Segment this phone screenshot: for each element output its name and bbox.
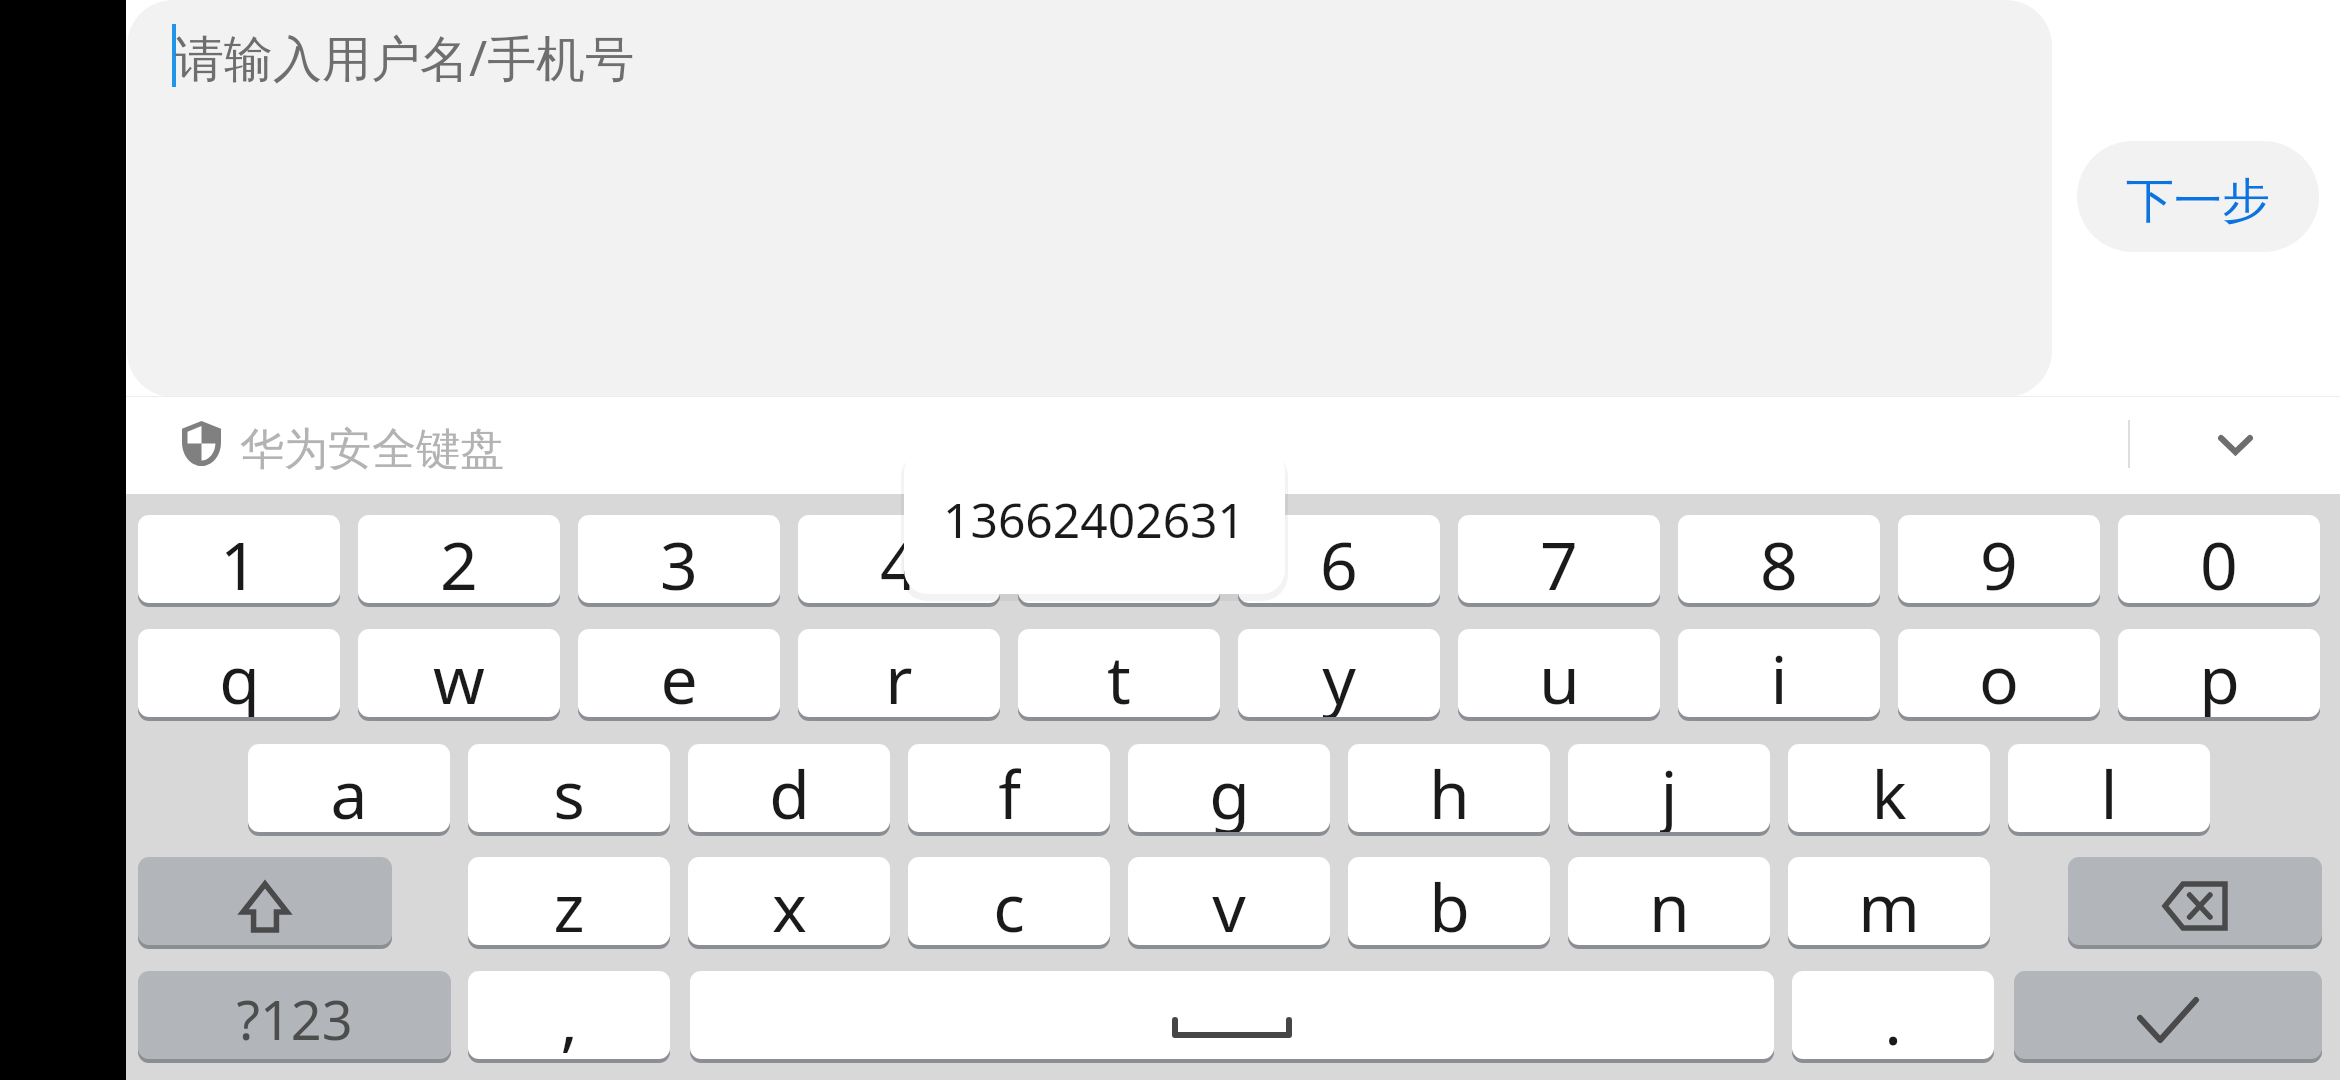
button[interactable]: 1 (138, 515, 340, 603)
button[interactable]: . (1792, 971, 1994, 1059)
staticText: 1 (220, 519, 258, 603)
button[interactable]: 0 (2118, 515, 2320, 603)
staticText: v (1212, 861, 1246, 945)
button[interactable]: Enter (2014, 971, 2322, 1059)
staticText: i (1770, 633, 1788, 717)
button[interactable]: 8 (1678, 515, 1880, 603)
button[interactable]: l (2008, 744, 2210, 832)
button[interactable]: w (358, 629, 560, 717)
staticText: 4 (880, 519, 918, 603)
staticText: y (1322, 633, 1356, 717)
button[interactable]: x (688, 857, 890, 945)
staticText: j (1660, 748, 1678, 832)
button[interactable]: , (468, 971, 670, 1059)
button[interactable]: u (1458, 629, 1660, 717)
button[interactable]: Space (690, 971, 1774, 1059)
button[interactable]: p (2118, 629, 2320, 717)
staticText: l (2100, 748, 2118, 832)
staticText: s (553, 748, 585, 832)
staticText: r (885, 633, 913, 717)
staticText: a (330, 748, 368, 832)
button[interactable]: b (1348, 857, 1550, 945)
staticText: u (1539, 633, 1580, 717)
staticText: b (1429, 861, 1470, 945)
staticText: . (1884, 974, 1902, 1059)
button[interactable]: 2 (358, 515, 560, 603)
button[interactable]: z (468, 857, 670, 945)
button[interactable]: v (1128, 857, 1330, 945)
staticText: t (1107, 633, 1131, 717)
staticText: 7 (1540, 519, 1578, 603)
staticText: f (998, 748, 1021, 832)
staticText: x (772, 861, 807, 945)
button[interactable]: 下一步 (2077, 141, 2319, 252)
staticText: 3 (660, 519, 698, 603)
staticText: 请输入用户名/手机号 (175, 24, 635, 91)
button[interactable]: Shift (138, 857, 392, 945)
button[interactable]: t (1018, 629, 1220, 717)
button[interactable]: 7 (1458, 515, 1660, 603)
staticText: e (660, 633, 698, 717)
staticText: d (769, 748, 810, 832)
staticText: 0 (2200, 519, 2238, 603)
button[interactable]: 9 (1898, 515, 2100, 603)
staticText: z (553, 861, 585, 945)
staticText: 8 (1760, 519, 1798, 603)
button[interactable]: a (248, 744, 450, 832)
button[interactable]: r (798, 629, 1000, 717)
button[interactable]: k (1788, 744, 1990, 832)
button[interactable]: c (908, 857, 1110, 945)
staticText: 13662402631 (943, 487, 1246, 552)
button[interactable]: j (1568, 744, 1770, 832)
staticText: , (560, 974, 578, 1059)
staticText: h (1429, 748, 1470, 832)
button[interactable]: Backspace (2068, 857, 2322, 945)
staticText: 5 (1100, 519, 1138, 603)
staticText: m (1858, 861, 1920, 945)
button[interactable]: d (688, 744, 890, 832)
button[interactable]: n (1568, 857, 1770, 945)
staticText: k (1871, 748, 1907, 832)
staticText: 下一步 (2126, 171, 2270, 231)
button[interactable]: Hide keyboard (2191, 401, 2279, 489)
staticText: 9 (1980, 519, 2018, 603)
button[interactable]: i (1678, 629, 1880, 717)
staticText: q (219, 633, 260, 717)
staticText: ?123 (236, 982, 353, 1056)
staticText: g (1209, 748, 1250, 832)
staticText: 2 (440, 519, 478, 603)
button[interactable]: ?123 (138, 971, 451, 1059)
button[interactable]: 请输入用户名/手机号 (127, 0, 2052, 397)
button[interactable]: g (1128, 744, 1330, 832)
button[interactable]: o (1898, 629, 2100, 717)
staticText: n (1649, 861, 1690, 945)
button[interactable]: h (1348, 744, 1550, 832)
button[interactable]: e (578, 629, 780, 717)
button[interactable]: f (908, 744, 1110, 832)
staticText: 华为安全键盘 (240, 422, 504, 477)
button[interactable]: s (468, 744, 670, 832)
staticText: c (993, 861, 1025, 945)
button[interactable]: 5 (1018, 515, 1220, 603)
staticText: p (2199, 633, 2240, 717)
staticText: w (433, 633, 485, 717)
button[interactable]: 3 (578, 515, 780, 603)
button[interactable]: y (1238, 629, 1440, 717)
button[interactable]: m (1788, 857, 1990, 945)
staticText: o (1979, 633, 2019, 717)
button[interactable]: q (138, 629, 340, 717)
staticText: 6 (1320, 519, 1358, 603)
button[interactable]: 4 (798, 515, 1000, 603)
button[interactable]: 6 (1238, 515, 1440, 603)
